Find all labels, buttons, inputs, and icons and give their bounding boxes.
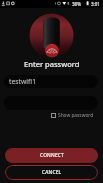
staticText: 3:01 [91, 1, 100, 7]
staticText: CONNECT [40, 152, 64, 159]
button[interactable]: Show password [51, 112, 94, 119]
staticText: 38% [72, 1, 81, 7]
button[interactable]: CONNECT [5, 148, 98, 163]
button[interactable]: CANCEL [5, 165, 98, 180]
staticText: CANCEL [42, 169, 62, 176]
staticText: Enter password [24, 59, 80, 69]
staticText: testwifi1 [9, 77, 37, 86]
staticText: Show password [58, 112, 94, 119]
button[interactable]: testwifi1 [4, 75, 98, 88]
